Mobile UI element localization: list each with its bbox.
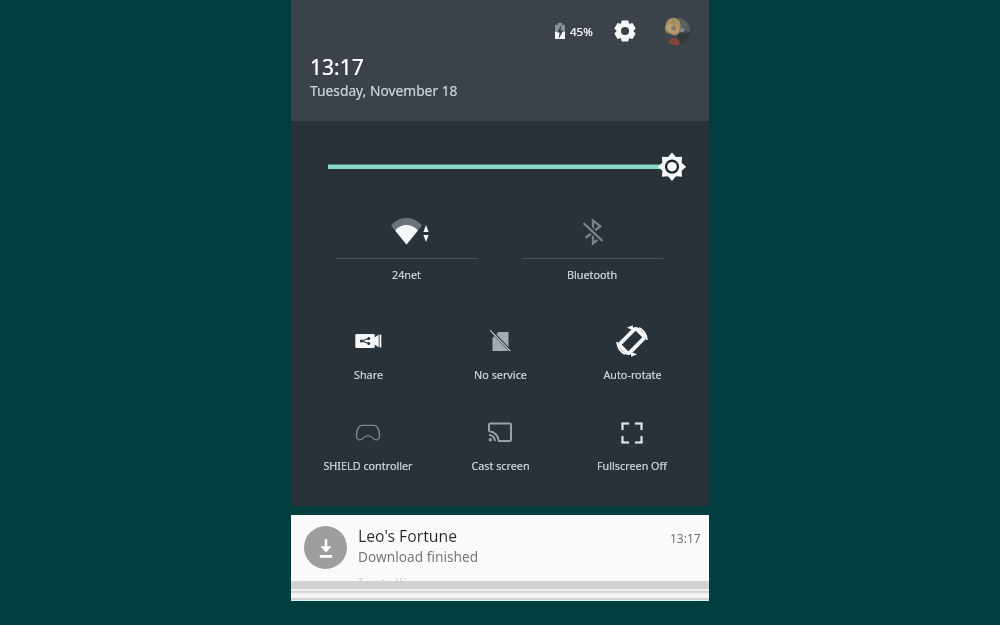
staticText: Tuesday, November 18 xyxy=(310,81,458,100)
staticText: Share xyxy=(354,367,383,382)
button[interactable]: Bluetooth xyxy=(522,209,663,289)
staticText: 45% xyxy=(570,24,593,40)
button[interactable]: Brightness xyxy=(313,151,687,182)
staticText: 13:17 xyxy=(310,53,364,82)
button[interactable]: SHIELD controller xyxy=(308,457,428,473)
button[interactable]: Share xyxy=(308,366,428,382)
button[interactable]: 24net xyxy=(336,209,478,289)
button[interactable] xyxy=(572,407,692,459)
button[interactable] xyxy=(440,315,560,367)
staticText: 24net xyxy=(392,267,422,282)
button[interactable]: No service xyxy=(440,366,560,382)
staticText: 13:17 xyxy=(670,530,701,546)
button[interactable]: Leo's Fortune xyxy=(291,515,709,581)
button[interactable] xyxy=(572,315,692,367)
staticText: Leo's Fortune xyxy=(358,525,458,546)
staticText: Fullscreen Off xyxy=(597,458,667,473)
button[interactable]: Auto-rotate xyxy=(572,366,692,382)
staticText: Bluetooth xyxy=(567,267,618,282)
staticText: Auto-rotate xyxy=(603,367,662,382)
button[interactable] xyxy=(440,407,560,459)
button[interactable]: Fullscreen Off xyxy=(572,457,692,473)
staticText: Cast screen xyxy=(471,458,530,473)
button[interactable] xyxy=(308,315,428,367)
staticText: No service xyxy=(474,367,527,382)
staticText: Download finished xyxy=(358,547,479,566)
button[interactable]: Cast screen xyxy=(440,457,560,473)
staticText: SHIELD controller xyxy=(323,458,413,473)
button[interactable]: Settings xyxy=(612,18,638,44)
staticText: Installing app xyxy=(358,573,459,594)
button[interactable] xyxy=(308,407,428,459)
button[interactable]: User profile xyxy=(662,17,690,45)
